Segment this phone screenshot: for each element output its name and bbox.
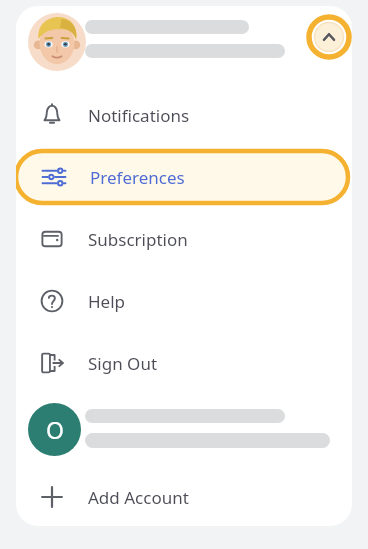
- staticText: Help: [88, 290, 126, 313]
- button[interactable]: O: [16, 394, 352, 466]
- button[interactable]: Help: [16, 270, 352, 332]
- staticText: Subscription: [88, 228, 188, 251]
- staticText: Sign Out: [88, 352, 158, 375]
- staticText: O: [46, 414, 64, 445]
- staticText: Preferences: [90, 166, 185, 189]
- staticText: Add Account: [88, 486, 189, 509]
- button[interactable]: Preferences: [16, 149, 350, 205]
- button[interactable]: Collapse account list: [307, 15, 351, 59]
- button[interactable]: Subscription: [16, 208, 352, 270]
- button[interactable]: Notifications: [16, 84, 352, 146]
- button[interactable]: [16, 6, 352, 78]
- staticText: Notifications: [88, 104, 190, 127]
- button[interactable]: Add Account: [16, 466, 352, 526]
- button[interactable]: Sign Out: [16, 332, 352, 394]
